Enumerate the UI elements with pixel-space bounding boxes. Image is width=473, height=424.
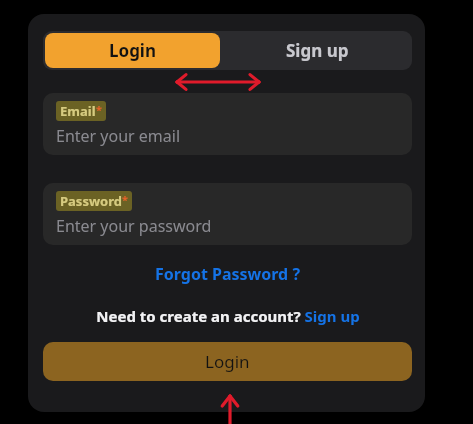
staticText: Login [109,39,157,62]
button[interactable]: Need to create an account? Sign up [92,304,364,328]
staticText: Sign up [286,39,349,62]
button[interactable]: Login [45,33,220,68]
button[interactable]: Email [43,93,412,155]
staticText: * [96,102,102,117]
button[interactable]: Password [43,183,412,245]
staticText: Login [205,350,250,373]
staticText: * [122,192,128,207]
staticText: Enter your password [56,215,212,237]
staticText: Need to create an account? Sign up [96,306,360,326]
button[interactable]: Sign up [222,31,412,70]
staticText: Email [60,102,96,120]
button[interactable]: Login [43,342,412,381]
button[interactable]: Forgot Password ? [149,260,307,288]
staticText: Forgot Password ? [155,263,301,285]
staticText: Enter your email [56,125,181,147]
staticText: Password [60,192,122,210]
